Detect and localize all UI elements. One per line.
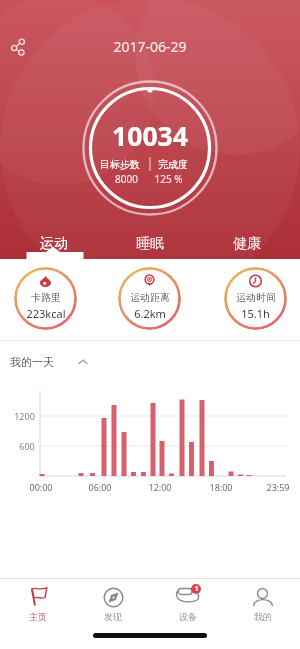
staticText: 1200 [14, 410, 35, 422]
staticText: 完成度 [158, 158, 188, 171]
staticText: 健康 [233, 235, 261, 253]
button[interactable]: 发现 [75, 586, 150, 624]
staticText: 125 % [154, 172, 183, 185]
button[interactable]: 主页 [0, 586, 75, 624]
staticText: 18:00 [209, 481, 233, 493]
staticText: 06:00 [88, 481, 112, 493]
button[interactable]: 睡眠 [120, 233, 180, 255]
staticText: 主页 [29, 611, 47, 622]
button[interactable]: 运动 [24, 233, 84, 255]
staticText: 运动时间 [236, 291, 276, 304]
staticText: 12:00 [148, 481, 172, 493]
staticText: 00:00 [29, 481, 53, 493]
staticText: 卡路里 [31, 291, 61, 304]
button[interactable]: 健康 [217, 233, 277, 255]
staticText: 睡眠 [136, 235, 164, 253]
staticText: 10034 [112, 118, 188, 154]
staticText: 1 [194, 584, 199, 594]
button[interactable]: 运动距离 [118, 267, 181, 330]
staticText: 运动 [40, 235, 68, 253]
staticText: 23:59 [266, 481, 290, 493]
button[interactable]: 我的 [225, 586, 300, 624]
staticText: 600 [19, 440, 35, 452]
staticText: 15.1h [241, 306, 270, 320]
staticText: 6.2km [134, 306, 166, 320]
staticText: 我的 [254, 611, 272, 622]
button[interactable]: 我的一天 [10, 353, 88, 371]
staticText: 发现 [104, 611, 122, 622]
staticText: 设备 [179, 611, 197, 622]
button[interactable]: 运动时间 [224, 267, 287, 330]
button[interactable]: 设备 [150, 586, 225, 624]
staticText: 我的一天 [10, 355, 54, 369]
staticText: 运动距离 [130, 291, 170, 304]
staticText: 223kcal [26, 306, 66, 320]
button[interactable]: 卡路里 [14, 267, 77, 330]
staticText: 2017-06-29 [113, 37, 187, 54]
staticText: 8000 [115, 172, 138, 185]
staticText: 目标步数 [100, 158, 140, 171]
